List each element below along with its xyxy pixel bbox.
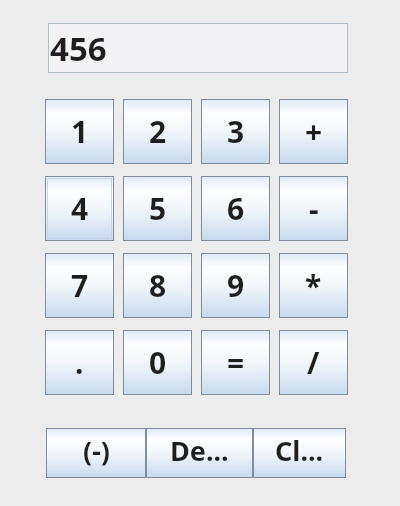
staticText: 8 xyxy=(149,265,167,306)
staticText: 0 xyxy=(149,342,167,383)
staticText: - xyxy=(309,188,319,229)
staticText: 1 xyxy=(71,111,89,152)
staticText: 2 xyxy=(149,111,167,152)
staticText: . xyxy=(75,342,84,383)
button[interactable]: - xyxy=(279,176,348,241)
button[interactable]: 5 xyxy=(123,176,192,241)
staticText: 4 xyxy=(71,188,89,229)
button[interactable]: 2 xyxy=(123,99,192,164)
button[interactable]: 6 xyxy=(201,176,270,241)
button[interactable]: 4 xyxy=(45,176,114,241)
staticText: (-) xyxy=(83,432,110,469)
button[interactable]: 7 xyxy=(45,253,114,318)
button[interactable]: 8 xyxy=(123,253,192,318)
button[interactable]: / xyxy=(279,330,348,395)
button[interactable]: 456 xyxy=(48,23,348,73)
staticText: 456 xyxy=(50,26,107,71)
button[interactable]: Cl... xyxy=(253,428,346,478)
staticText: 9 xyxy=(227,265,245,306)
staticText: 5 xyxy=(149,188,167,229)
button[interactable]: . xyxy=(45,330,114,395)
button[interactable]: (-) xyxy=(46,428,146,478)
staticText: = xyxy=(227,342,245,383)
staticText: * xyxy=(305,265,322,306)
staticText: 6 xyxy=(227,188,245,229)
button[interactable]: 1 xyxy=(45,99,114,164)
button[interactable]: De... xyxy=(146,428,253,478)
staticText: De... xyxy=(170,432,229,469)
button[interactable]: + xyxy=(279,99,348,164)
staticText: Cl... xyxy=(275,432,324,469)
button[interactable]: 3 xyxy=(201,99,270,164)
button[interactable]: * xyxy=(279,253,348,318)
button[interactable]: 0 xyxy=(123,330,192,395)
button[interactable]: 9 xyxy=(201,253,270,318)
staticText: 7 xyxy=(71,265,89,306)
staticText: + xyxy=(305,111,323,152)
button[interactable]: = xyxy=(201,330,270,395)
staticText: 3 xyxy=(227,111,245,152)
staticText: / xyxy=(307,342,320,383)
